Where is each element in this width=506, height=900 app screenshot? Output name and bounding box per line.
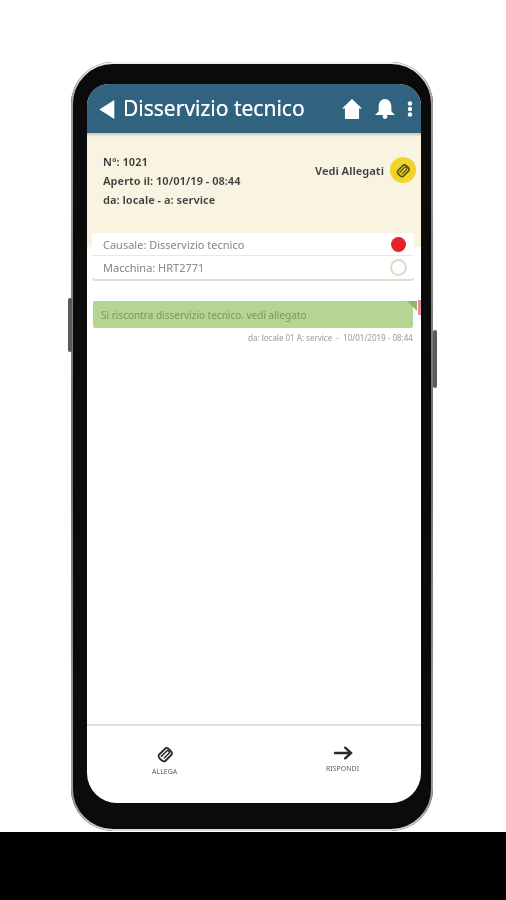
button[interactable]: Macchina: HRT2771 [92, 256, 414, 278]
staticText: da: locale - a: service [103, 192, 216, 207]
staticText: Si riscontra disservizio tecnico. vedi a… [101, 308, 307, 322]
button[interactable] [370, 94, 400, 124]
button[interactable]: ALLEGA [135, 746, 195, 786]
staticText: da: locale 01 A: service - 10/01/2019 - … [248, 332, 413, 343]
button[interactable]: RISPONDI [313, 746, 373, 786]
button[interactable]: Vedi Allegati [315, 157, 416, 183]
staticText: N°: 1021 [103, 154, 148, 169]
button[interactable]: Causale: Disservizio tecnico [92, 233, 414, 255]
button[interactable] [402, 101, 418, 117]
button[interactable] [337, 94, 367, 124]
staticText: Causale: Disservizio tecnico [103, 237, 245, 252]
staticText: ALLEGA [152, 767, 178, 777]
staticText: Disservizio tecnico [123, 94, 305, 123]
staticText: RISPONDI [326, 764, 360, 774]
button[interactable]: Si riscontra disservizio tecnico. vedi a… [93, 301, 413, 328]
staticText: Macchina: HRT2771 [103, 260, 205, 275]
staticText: Aperto il: 10/01/19 - 08:44 [103, 173, 241, 188]
staticText: Vedi Allegati [315, 163, 384, 178]
button[interactable] [93, 95, 121, 123]
